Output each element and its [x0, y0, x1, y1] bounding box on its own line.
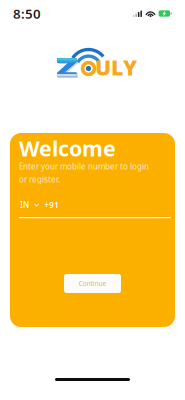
staticText: +91 [44, 200, 59, 210]
staticText: or register. [19, 174, 60, 185]
button[interactable]: IN [20, 199, 172, 211]
staticText: Continue [78, 279, 106, 288]
staticText: 8:50 [13, 5, 41, 22]
staticText: Enter your mobile number to login [19, 161, 149, 172]
staticText: IN [20, 200, 29, 210]
staticText: ULY [95, 53, 137, 81]
button[interactable]: Continue [64, 274, 121, 293]
staticText: Welcome [19, 134, 116, 162]
